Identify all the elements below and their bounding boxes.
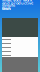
staticText: Make your work simple [2, 0, 32, 8]
staticText: Docs [2, 6, 11, 11]
staticText: and productive with [2, 0, 33, 11]
